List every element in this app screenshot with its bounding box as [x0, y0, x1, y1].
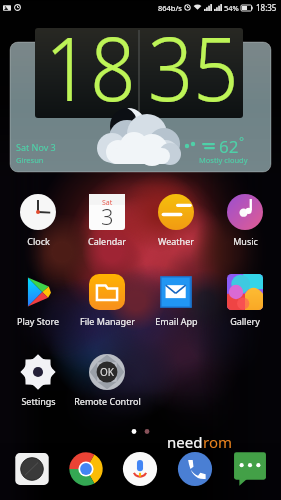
staticText: Calendar — [88, 235, 126, 247]
button[interactable]: Assistant — [121, 450, 159, 488]
button[interactable]: Phone — [176, 450, 214, 488]
staticText: 3 — [101, 201, 114, 231]
staticText: Settings — [21, 395, 56, 407]
staticText: ° — [239, 133, 245, 149]
staticText: 62 — [219, 135, 239, 158]
button[interactable]: Email App — [142, 272, 210, 327]
button[interactable]: Chrome — [67, 450, 105, 488]
staticText: 54% — [224, 3, 239, 13]
staticText: Clock — [27, 235, 50, 247]
button[interactable]: Gallery — [211, 272, 279, 327]
staticText: rom — [203, 432, 232, 452]
staticText: 35 — [148, 7, 239, 127]
staticText: Giresun — [16, 155, 44, 165]
button[interactable]: Weather — [142, 192, 210, 247]
staticText: Remote Control — [74, 395, 141, 407]
staticText: OK — [100, 365, 114, 379]
button[interactable]: Camera — [13, 450, 51, 488]
staticText: 18:35 — [256, 2, 277, 13]
staticText: File Manager — [80, 315, 135, 327]
button[interactable]: Music — [211, 192, 279, 247]
staticText: 18 — [45, 7, 136, 127]
staticText: Music — [233, 235, 258, 247]
staticText: need — [167, 432, 203, 452]
button[interactable]: OK — [73, 352, 141, 407]
button[interactable]: Play Store — [4, 272, 72, 327]
staticText: Email App — [155, 315, 198, 327]
staticText: Sat — [102, 198, 113, 208]
button[interactable]: Settings — [4, 352, 72, 407]
staticText: 864b/s — [158, 3, 182, 13]
button[interactable]: Clock — [4, 192, 72, 247]
staticText: Sat Nov 3 — [16, 141, 56, 153]
staticText: Mostly cloudy — [199, 155, 248, 165]
staticText: Weather — [158, 235, 194, 247]
button[interactable]: Messages — [231, 450, 269, 488]
staticText: Gallery — [230, 315, 260, 327]
button[interactable]: File Manager — [73, 272, 141, 327]
button[interactable] — [10, 28, 271, 172]
button[interactable]: Sat — [73, 192, 141, 247]
staticText: Play Store — [17, 315, 59, 327]
